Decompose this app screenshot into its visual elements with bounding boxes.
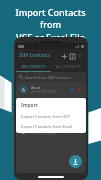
staticText: M xyxy=(21,115,26,121)
button[interactable]: Edit xyxy=(67,85,75,93)
button[interactable]: S xyxy=(19,124,83,138)
staticText: Import Contacts from VCF xyxy=(21,114,70,119)
staticText: Import Contacts from xyxy=(4,6,97,30)
button[interactable]: Add xyxy=(60,52,68,60)
button[interactable]: Edit xyxy=(67,113,75,121)
button[interactable]: Delete xyxy=(75,127,83,135)
button[interactable]: Delete xyxy=(75,85,83,93)
staticText: Arun xyxy=(31,85,41,90)
staticText: Import Contacts from Excel xyxy=(21,124,73,129)
staticText: Sunil xyxy=(31,127,41,132)
button[interactable]: SIM CONTACTS xyxy=(16,62,51,71)
staticText: +91 98765 43210 xyxy=(31,90,57,94)
button[interactable]: Import Contacts from Excel xyxy=(21,124,81,129)
button[interactable]: Import contacts xyxy=(69,155,82,168)
staticText: Louis xyxy=(31,99,41,104)
staticText: +91 98765 33333 xyxy=(31,132,57,136)
staticText: VCF or Excel File xyxy=(16,31,85,43)
button[interactable]: L xyxy=(19,96,83,110)
staticText: Search from SIM Contacts xyxy=(25,75,71,80)
button[interactable]: ALL CONTACTS xyxy=(51,62,86,71)
staticText: S xyxy=(22,129,25,135)
button[interactable]: Edit xyxy=(67,127,75,135)
staticText: ALL CONTACTS xyxy=(56,64,81,69)
staticText: A xyxy=(22,87,25,93)
staticText: SIM Contacts xyxy=(19,52,51,59)
button[interactable]: Grid view xyxy=(68,52,76,60)
staticText: SIM CONTACTS xyxy=(21,64,46,69)
button[interactable]: A xyxy=(19,82,83,96)
button[interactable]: Import Contacts from VCF xyxy=(21,114,81,119)
staticText: Import xyxy=(21,102,38,109)
staticText: Matthew xyxy=(31,113,48,118)
staticText: L xyxy=(22,101,25,107)
button[interactable]: Search from SIM Contacts xyxy=(19,72,83,82)
staticText: +91 98765 01111 xyxy=(31,104,57,108)
button[interactable]: More options xyxy=(76,52,83,59)
button[interactable]: M xyxy=(19,110,83,124)
